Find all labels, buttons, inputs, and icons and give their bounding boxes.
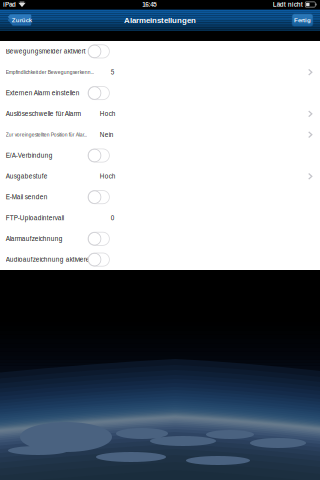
staticText: 5 — [111, 69, 115, 76]
staticText: Hoch — [100, 173, 116, 180]
staticText: 0 — [111, 214, 115, 221]
button[interactable]: Bewegungsmelder aktiviert — [0, 41, 320, 62]
staticText: Externen Alarm einstellen — [6, 89, 80, 97]
staticText: Nein — [100, 131, 114, 138]
staticText: Hoch — [100, 110, 116, 117]
button[interactable]: E-Mail senden — [0, 187, 320, 207]
staticText: Ausgabestufe — [6, 173, 48, 180]
staticText: Auslöseschwelle für Alarm — [6, 110, 81, 117]
staticText: E/A-Verbindung — [6, 152, 53, 159]
button[interactable]: Fertig — [292, 14, 313, 26]
staticText: FTP-Uploadintervall — [6, 214, 64, 221]
button[interactable]: Zurück — [8, 14, 31, 26]
button[interactable]: Empfindlichkeit der Bewegungserkenn... — [0, 62, 320, 83]
button[interactable]: Zur voreingestellten Position für Alar..… — [0, 124, 320, 145]
staticText: 16:45 — [142, 1, 156, 8]
button[interactable]: Ausgabestufe — [0, 166, 320, 187]
staticText: Empfindlichkeit der Bewegungserkenn... — [6, 69, 94, 75]
button[interactable]: Externen Alarm einstellen — [0, 83, 320, 103]
staticText: iPad — [3, 1, 16, 8]
button[interactable]: Auslöseschwelle für Alarm — [0, 103, 320, 124]
staticText: Alarmeinstellungen — [124, 16, 196, 25]
staticText: Zur voreingestellten Position für Alar..… — [6, 132, 87, 137]
staticText: Alarmaufzeichnung — [6, 235, 63, 242]
button[interactable]: FTP-Uploadintervall — [0, 208, 320, 228]
staticText: E-Mail senden — [6, 194, 48, 201]
staticText: Bewegungsmelder aktiviert — [6, 48, 86, 55]
staticText: Audioaufzeichnung aktivieren — [6, 256, 94, 263]
button[interactable]: Alarmaufzeichnung — [0, 228, 320, 249]
staticText: Fertig — [294, 17, 311, 23]
button[interactable]: Audioaufzeichnung aktivieren — [0, 249, 320, 270]
staticText: Zurück — [12, 17, 32, 23]
button[interactable]: E/A-Verbindung — [0, 145, 320, 166]
staticText: Lädt nicht — [273, 1, 303, 8]
